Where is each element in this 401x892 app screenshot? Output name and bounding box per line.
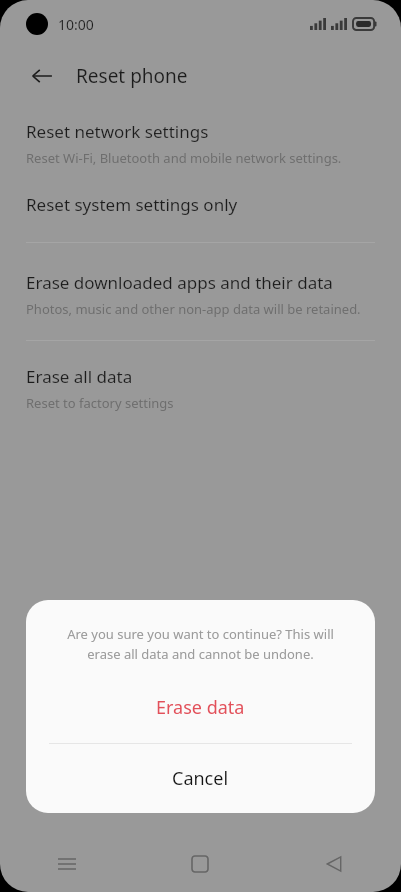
button[interactable]: Recent apps	[0, 836, 133, 892]
button[interactable]: Reset system settings only	[0, 191, 401, 218]
button[interactable]: Erase all data	[0, 363, 401, 414]
staticText: Cancel	[172, 766, 229, 791]
staticText: Erase all data	[26, 365, 133, 388]
button[interactable]: Back	[267, 836, 401, 892]
staticText: Erase data	[156, 695, 245, 720]
button[interactable]: Erase downloaded apps and their data	[0, 269, 401, 320]
button[interactable]: Back	[22, 56, 62, 96]
staticText: Reset system settings only	[26, 193, 238, 216]
button[interactable]: Cancel	[26, 744, 375, 813]
staticText: Reset to factory settings	[26, 394, 174, 412]
staticText: Photos, music and other non-app data wil…	[26, 300, 361, 318]
staticText: Are you sure you want to continue? This …	[52, 625, 349, 663]
staticText: 10:00	[58, 15, 94, 34]
button[interactable]: Reset network settings	[0, 118, 401, 169]
staticText: Reset phone	[76, 63, 188, 89]
staticText: Erase downloaded apps and their data	[26, 271, 333, 294]
staticText: Reset Wi-Fi, Bluetooth and mobile networ…	[26, 149, 342, 167]
button[interactable]: Erase data	[26, 685, 375, 729]
staticText: Reset network settings	[26, 120, 209, 143]
button[interactable]: Home	[133, 836, 267, 892]
